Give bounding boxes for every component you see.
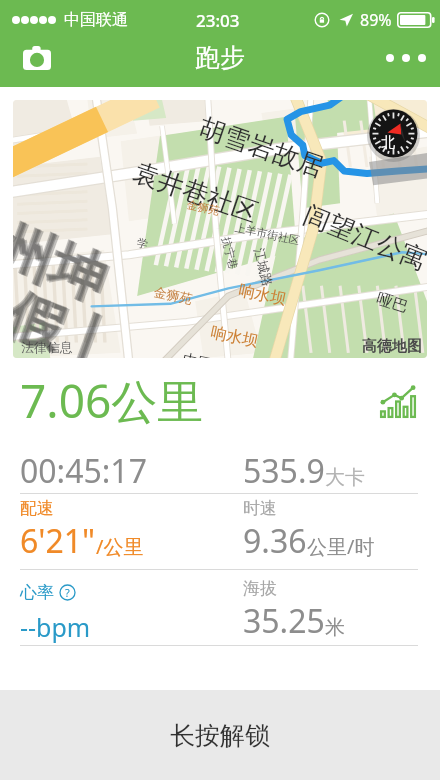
staticText: 胡雪岩故居 (195, 111, 328, 184)
button[interactable]: More options (378, 36, 434, 80)
staticText: 89% (360, 9, 392, 31)
button[interactable]: Map (13, 100, 427, 358)
staticText: 535.9 (243, 449, 325, 493)
staticText: 金狮苑 (185, 197, 221, 218)
staticText: 假丨 (13, 280, 126, 358)
button[interactable]: Heart rate info (59, 584, 76, 601)
staticText: 哑巴 (374, 288, 410, 317)
staticText: 上羊市街社区 (233, 220, 301, 248)
staticText: 9.36 (243, 519, 307, 563)
staticText: 35.25 (243, 599, 325, 643)
staticText: 江城路 (251, 246, 276, 288)
staticText: 00:45:17 (20, 449, 147, 493)
staticText: 州坤 (13, 211, 115, 316)
staticText: 袁井巷社区 (129, 156, 262, 229)
staticText: 长按解锁 (170, 720, 270, 751)
staticText: 7.06公里 (20, 369, 204, 432)
staticText: 假丨 (13, 279, 125, 358)
staticText: 北 (381, 134, 395, 152)
staticText: 抗宁巷 (219, 235, 241, 271)
staticText: 法律信息 (21, 339, 73, 355)
staticText: 23:03 (196, 9, 240, 32)
staticText: 公里/时 (307, 533, 375, 560)
staticText: 中国4 (181, 348, 223, 358)
staticText: 配速 (20, 498, 54, 519)
staticText: 米 (325, 615, 345, 640)
staticText: 学 (135, 235, 149, 251)
staticText: 闾望江公寓 (299, 198, 427, 277)
staticText: 中国联通 (64, 10, 128, 30)
staticText: 海拔 (243, 578, 277, 599)
staticText: 假丨 (13, 281, 128, 358)
staticText: 响水坝 (237, 280, 288, 310)
button[interactable]: Camera (15, 36, 59, 80)
button[interactable]: Chart (378, 381, 418, 421)
staticText: /公里 (96, 533, 144, 560)
button[interactable]: 长按解锁 (0, 690, 440, 780)
staticText: 大卡 (325, 465, 365, 490)
staticText: 高德地图 (362, 337, 422, 356)
staticText: 州坤 (13, 213, 118, 318)
staticText: 跑步 (195, 42, 245, 73)
staticText: ? (65, 585, 70, 600)
staticText: 时速 (243, 498, 277, 519)
staticText: 心率 (20, 582, 54, 603)
staticText: 6'21" (20, 519, 96, 563)
staticText: 州坤 (13, 212, 116, 317)
staticText: 响水坝 (209, 322, 260, 352)
staticText: 金狮苑 (152, 283, 194, 307)
staticText: --bpm (20, 610, 91, 644)
